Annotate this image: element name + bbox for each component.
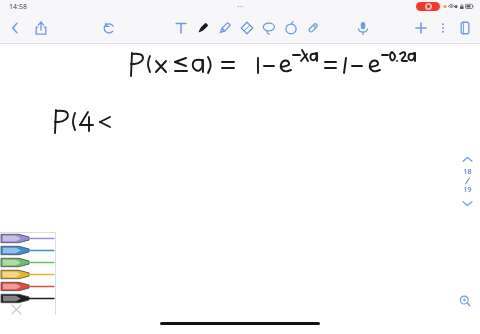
button[interactable]: Next page <box>459 195 475 211</box>
button[interactable]: Share <box>30 17 52 39</box>
button[interactable]: Pen colour 2 <box>0 244 56 256</box>
staticText: ••• <box>237 3 244 11</box>
button[interactable]: Record audio <box>352 17 374 39</box>
button[interactable]: Add page <box>410 17 432 39</box>
button[interactable]: Pages <box>454 17 476 39</box>
button[interactable]: More options <box>432 17 454 39</box>
button[interactable]: Pen colour 5 <box>0 280 56 292</box>
button[interactable]: Zoom <box>454 290 476 312</box>
button[interactable]: Previous page <box>459 151 475 167</box>
button[interactable]: Back <box>4 17 26 39</box>
button[interactable]: Laser pointer <box>302 17 324 39</box>
button[interactable]: Undo <box>98 17 120 39</box>
staticText: 14:58 <box>9 2 27 12</box>
button[interactable]: Text tool <box>170 17 192 39</box>
button[interactable]: Pen tool <box>192 17 214 39</box>
staticText: 18 <box>463 167 472 177</box>
button[interactable]: Eraser <box>236 17 258 39</box>
button[interactable]: Pen colour 1 <box>0 232 56 244</box>
button[interactable]: Highlighter <box>214 17 236 39</box>
button[interactable]: Pen colour 3 <box>0 256 56 268</box>
staticText: 19 <box>463 185 472 195</box>
button[interactable]: Pen colour 4 <box>0 268 56 280</box>
button[interactable]: Close palette <box>0 304 56 315</box>
button[interactable]: Pen colour 6 <box>0 292 56 304</box>
button[interactable]: Lasso select <box>258 17 280 39</box>
button[interactable]: Shape tool <box>280 17 302 39</box>
